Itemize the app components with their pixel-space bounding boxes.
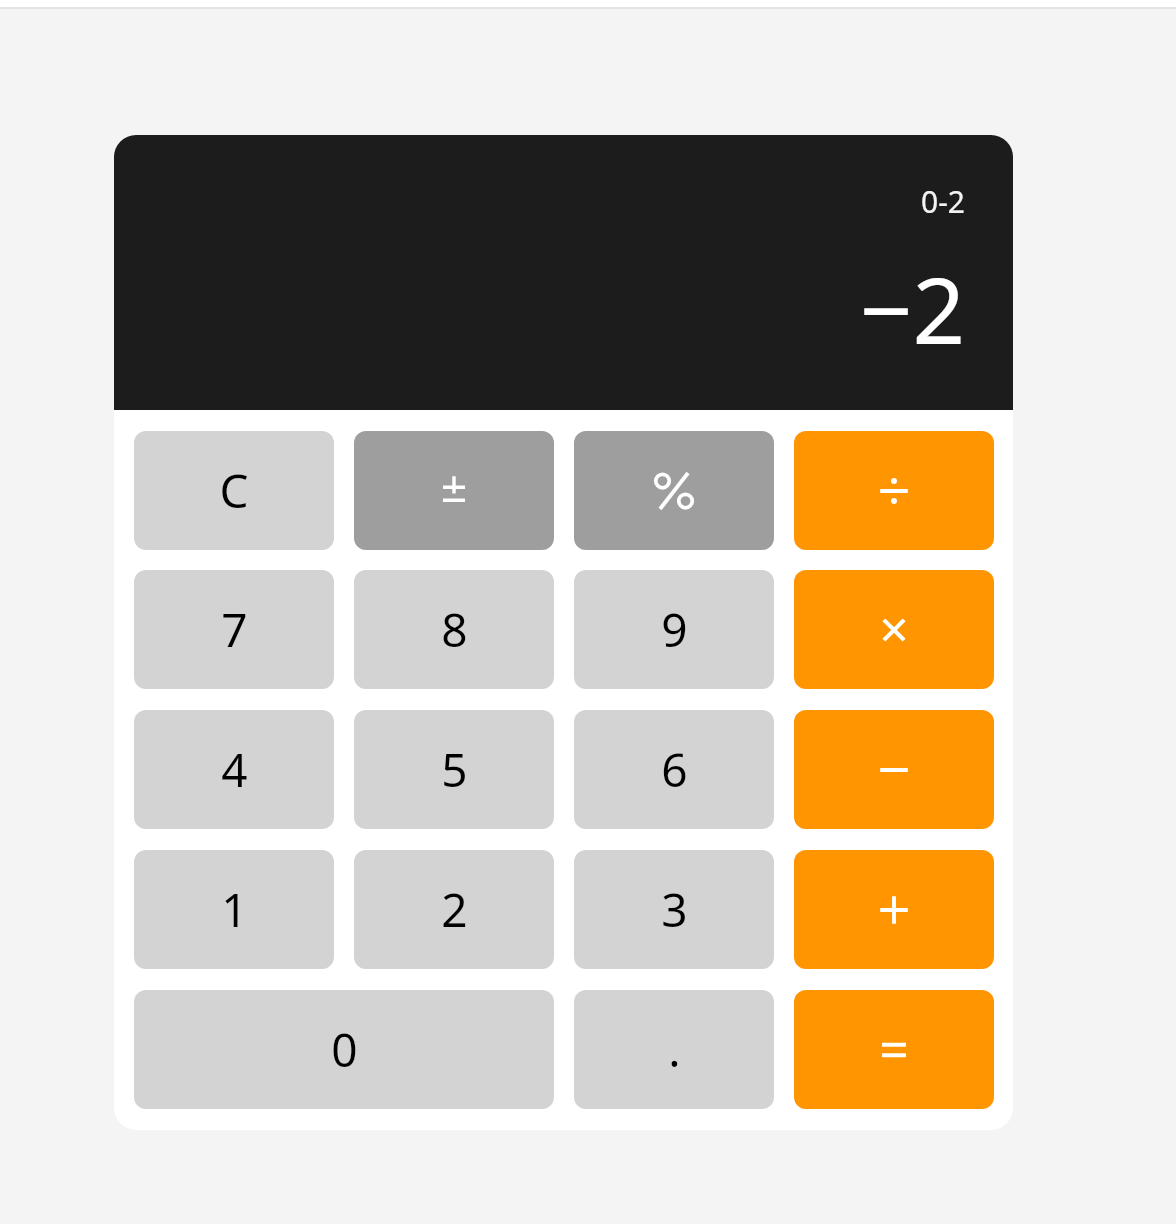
staticText: −2 bbox=[859, 246, 965, 371]
button[interactable]: . bbox=[574, 990, 774, 1109]
staticText: 2 bbox=[441, 878, 468, 941]
button[interactable]: 6 bbox=[574, 710, 774, 829]
button[interactable]: Divide bbox=[794, 431, 994, 550]
button[interactable]: C bbox=[134, 431, 334, 550]
staticText: 6 bbox=[661, 738, 688, 801]
button[interactable]: Percent bbox=[574, 431, 774, 550]
staticText: 9 bbox=[661, 598, 688, 661]
button[interactable]: 9 bbox=[574, 570, 774, 689]
staticText: 0-2 bbox=[921, 181, 965, 222]
staticText: . bbox=[668, 1018, 681, 1081]
button[interactable]: Minus bbox=[794, 710, 994, 829]
staticText: 7 bbox=[221, 598, 248, 661]
staticText: 1 bbox=[221, 878, 248, 941]
button[interactable]: Toggle sign bbox=[354, 431, 554, 550]
button[interactable]: 0 bbox=[134, 990, 554, 1109]
staticText: 8 bbox=[441, 598, 468, 661]
button[interactable]: Equals bbox=[794, 990, 994, 1109]
button[interactable]: 2 bbox=[354, 850, 554, 969]
staticText: C bbox=[219, 459, 249, 522]
staticText: 3 bbox=[661, 878, 688, 941]
staticText: 0 bbox=[331, 1018, 358, 1081]
button[interactable]: 7 bbox=[134, 570, 334, 689]
staticText: 5 bbox=[441, 738, 468, 801]
staticText: 4 bbox=[221, 738, 248, 801]
button[interactable]: 8 bbox=[354, 570, 554, 689]
button[interactable]: 1 bbox=[134, 850, 334, 969]
button[interactable]: 4 bbox=[134, 710, 334, 829]
button[interactable]: 5 bbox=[354, 710, 554, 829]
button[interactable]: 3 bbox=[574, 850, 774, 969]
button[interactable]: Plus bbox=[794, 850, 994, 969]
button[interactable]: Multiply bbox=[794, 570, 994, 689]
